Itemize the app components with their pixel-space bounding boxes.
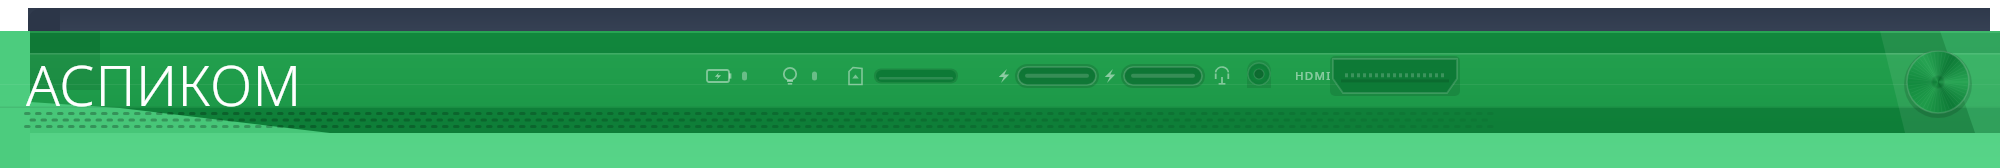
button[interactable]: АСПИКОМ laptop ports banner [0,0,2000,168]
